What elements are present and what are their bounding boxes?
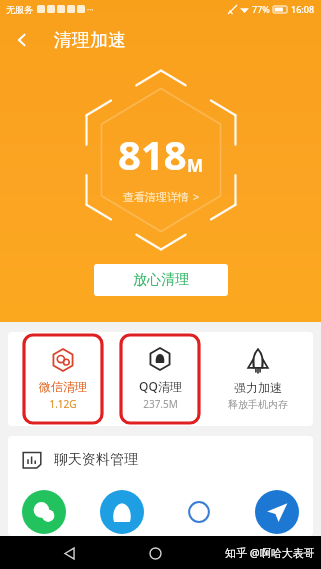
staticText: 查看清理详情	[123, 190, 189, 204]
staticText: 237.5M	[143, 397, 178, 411]
button[interactable]: App 0	[22, 490, 66, 534]
button[interactable]: 强力加速	[213, 335, 303, 423]
button[interactable]: 放心清理	[94, 264, 228, 296]
staticText: 无服务	[6, 4, 33, 15]
button[interactable]: 微信清理	[24, 335, 102, 423]
staticText: 知乎 @啊哈大表哥	[225, 545, 315, 560]
staticText: 强力加速	[234, 380, 282, 395]
staticText: 聊天资料管理	[54, 451, 138, 469]
button[interactable]: 聊天资料管理	[8, 436, 313, 536]
staticText: QQ清理	[139, 378, 182, 394]
button[interactable]: 查看清理详情	[119, 187, 204, 206]
staticText: 818	[118, 127, 187, 181]
button[interactable]: App 1	[100, 490, 144, 534]
staticText: 1.12G	[49, 397, 77, 411]
staticText: 释放手机内存	[228, 398, 288, 411]
button[interactable]: Back	[53, 537, 85, 569]
staticText: 放心清理	[133, 271, 189, 289]
staticText: 清理加速	[54, 29, 126, 52]
button[interactable]: QQ清理	[121, 335, 199, 423]
button[interactable]: Back	[0, 18, 44, 62]
button[interactable]: App 2	[177, 490, 221, 534]
staticText: 微信清理	[39, 379, 87, 394]
staticText: ···	[87, 4, 94, 15]
staticText: M	[187, 154, 204, 177]
staticText: 16:08	[291, 3, 315, 15]
button[interactable]: App 3	[255, 490, 299, 534]
staticText: 77%	[252, 3, 270, 15]
button[interactable]: Home	[139, 537, 171, 569]
staticText: >	[193, 189, 200, 204]
